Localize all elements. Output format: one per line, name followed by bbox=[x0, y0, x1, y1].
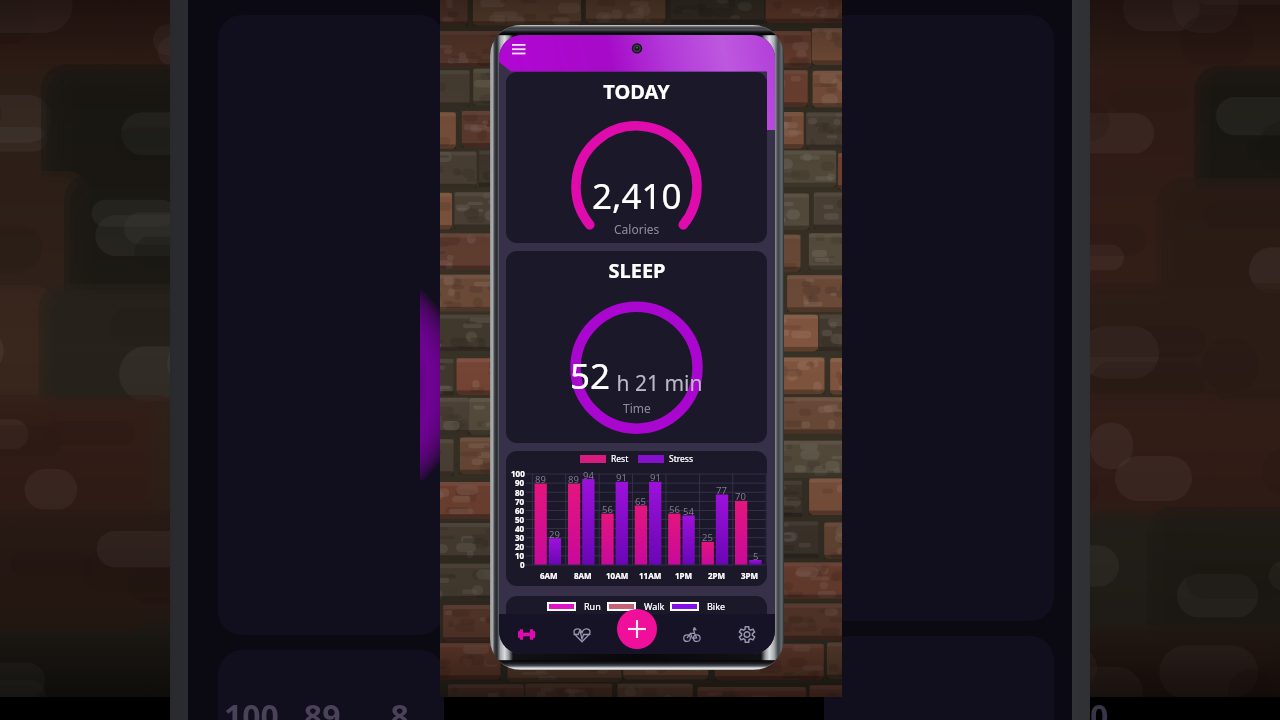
staticText: 52 bbox=[570, 352, 611, 400]
staticText: 1PM bbox=[675, 570, 693, 581]
staticText: 40 bbox=[515, 523, 525, 534]
staticText: 11AM bbox=[639, 570, 662, 581]
staticText: 2PM bbox=[708, 570, 726, 581]
staticText: 50 bbox=[515, 514, 525, 525]
staticText: 91 bbox=[650, 471, 661, 484]
staticText: Walk bbox=[644, 600, 665, 612]
staticText: Calories bbox=[614, 221, 660, 237]
button[interactable]: 0 bbox=[506, 451, 767, 586]
button[interactable]: Menu bbox=[507, 39, 530, 58]
staticText: 10AM bbox=[606, 570, 629, 581]
staticText: 89 bbox=[535, 473, 546, 486]
staticText: 65 bbox=[635, 495, 646, 508]
button[interactable]: Settings bbox=[730, 616, 764, 652]
staticText: 20 bbox=[515, 541, 525, 552]
staticText: 100 bbox=[511, 468, 525, 479]
staticText: 60 bbox=[515, 505, 525, 516]
button[interactable]: Workouts bbox=[509, 616, 543, 652]
staticText: 94 bbox=[583, 469, 594, 482]
staticText: Run bbox=[584, 600, 601, 612]
staticText: 54 bbox=[683, 505, 694, 518]
staticText: 8AM bbox=[574, 570, 592, 581]
staticText: 70 bbox=[515, 496, 525, 507]
staticText: 0 bbox=[520, 559, 525, 570]
staticText: 25 bbox=[702, 531, 713, 544]
staticText: 77 bbox=[716, 484, 727, 497]
staticText: 29 bbox=[549, 528, 560, 541]
button[interactable]: Add bbox=[617, 609, 657, 649]
staticText: SLEEP bbox=[608, 257, 666, 284]
button[interactable]: TODAY bbox=[506, 72, 767, 243]
staticText: 2,410 bbox=[592, 172, 682, 220]
staticText: 3PM bbox=[741, 570, 759, 581]
button[interactable]: SLEEP bbox=[506, 251, 767, 443]
staticText: 56 bbox=[669, 503, 680, 516]
staticText: Stress bbox=[669, 453, 694, 465]
staticText: 6AM bbox=[540, 570, 558, 581]
staticText: Rest bbox=[611, 453, 629, 465]
staticText: 91 bbox=[616, 471, 627, 484]
staticText: 70 bbox=[735, 490, 746, 503]
staticText: 30 bbox=[515, 532, 525, 543]
staticText: 90 bbox=[515, 477, 525, 488]
staticText: 5 bbox=[753, 550, 759, 563]
staticText: TODAY bbox=[603, 78, 670, 105]
button[interactable]: Heart rate bbox=[565, 616, 599, 652]
staticText: 56 bbox=[602, 503, 613, 516]
staticText: Bike bbox=[707, 600, 726, 612]
staticText: 100 89 8 bbox=[224, 694, 409, 720]
staticText: 10 bbox=[515, 550, 525, 561]
staticText: 0 bbox=[1090, 694, 1109, 720]
staticText: Time bbox=[623, 400, 651, 416]
button[interactable]: Cycling bbox=[675, 616, 709, 652]
staticText: h 21 min bbox=[611, 369, 703, 398]
staticText: 80 bbox=[515, 487, 525, 498]
staticText: 89 bbox=[568, 473, 579, 486]
